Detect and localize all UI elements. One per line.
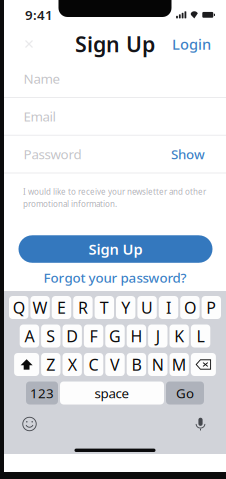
- staticText: 123: [30, 384, 54, 402]
- button[interactable]: H: [127, 324, 146, 347]
- staticText: Z: [46, 354, 55, 375]
- button[interactable]: Q: [9, 296, 28, 319]
- staticText: L: [197, 325, 205, 347]
- staticText: T: [100, 297, 109, 318]
- button[interactable]: J: [148, 324, 167, 347]
- button[interactable]: C: [84, 353, 103, 376]
- button[interactable]: V: [105, 353, 125, 376]
- button[interactable]: X: [62, 353, 82, 376]
- staticText: D: [66, 325, 78, 347]
- button[interactable]: F: [84, 324, 103, 347]
- staticText: Name: [23, 70, 60, 87]
- button[interactable]: Emoji: [17, 411, 42, 436]
- staticText: C: [89, 354, 99, 375]
- staticText: Y: [121, 297, 130, 318]
- button[interactable]: W: [30, 296, 50, 319]
- staticText: U: [141, 297, 153, 318]
- button[interactable]: P: [202, 296, 221, 319]
- staticText: G: [109, 325, 121, 347]
- button[interactable]: B: [127, 353, 146, 376]
- staticText: N: [152, 354, 164, 375]
- staticText: Sign Up: [75, 30, 155, 58]
- staticText: E: [57, 297, 66, 318]
- staticText: Email: [23, 107, 55, 125]
- button[interactable]: Close: [18, 33, 40, 55]
- button[interactable]: Forgot your password?: [43, 265, 186, 290]
- button[interactable]: M: [169, 353, 189, 376]
- staticText: F: [90, 325, 98, 347]
- button[interactable]: Show: [168, 141, 208, 167]
- staticText: Password: [23, 145, 81, 163]
- button[interactable]: Y: [116, 296, 135, 319]
- staticText: B: [131, 354, 141, 375]
- staticText: H: [130, 325, 142, 347]
- button[interactable]: K: [169, 324, 189, 347]
- staticText: R: [78, 297, 88, 318]
- button[interactable]: O: [180, 296, 200, 319]
- button[interactable]: R: [73, 296, 93, 319]
- staticText: promotional information.: [23, 198, 117, 209]
- button[interactable]: N: [148, 353, 167, 376]
- button[interactable]: Login: [169, 29, 214, 59]
- button[interactable]: Z: [41, 353, 60, 376]
- staticText: V: [110, 354, 120, 375]
- button[interactable]: 123: [26, 381, 58, 404]
- button[interactable]: A: [20, 324, 39, 347]
- staticText: M: [172, 354, 187, 375]
- staticText: Forgot your password?: [43, 269, 186, 286]
- staticText: K: [174, 325, 184, 347]
- button[interactable]: U: [137, 296, 157, 319]
- staticText: W: [33, 297, 48, 318]
- staticText: I: [166, 297, 171, 318]
- staticText: S: [46, 325, 55, 347]
- staticText: P: [206, 297, 216, 318]
- button[interactable]: Sign Up: [18, 235, 212, 263]
- button[interactable]: G: [105, 324, 125, 347]
- staticText: 9:41: [25, 6, 53, 24]
- button[interactable]: Delete: [191, 353, 216, 376]
- staticText: Show: [171, 145, 205, 163]
- button[interactable]: L: [191, 324, 210, 347]
- button[interactable]: E: [52, 296, 71, 319]
- button[interactable]: I: [159, 296, 178, 319]
- staticText: space: [94, 384, 129, 402]
- staticText: Go: [176, 384, 194, 402]
- button[interactable]: S: [41, 324, 60, 347]
- button[interactable]: Dictation: [188, 411, 213, 436]
- button[interactable]: Go: [166, 381, 204, 404]
- staticText: J: [156, 325, 160, 347]
- staticText: A: [24, 325, 34, 347]
- staticText: I would like to receive your newsletter …: [23, 186, 206, 197]
- staticText: X: [68, 354, 77, 375]
- staticText: O: [184, 297, 196, 318]
- staticText: Login: [172, 34, 211, 54]
- staticText: Sign Up: [88, 239, 142, 259]
- button[interactable]: D: [62, 324, 82, 347]
- button[interactable]: Shift: [14, 353, 39, 376]
- button[interactable]: T: [95, 296, 114, 319]
- button[interactable]: space: [60, 381, 164, 404]
- staticText: Q: [13, 297, 25, 318]
